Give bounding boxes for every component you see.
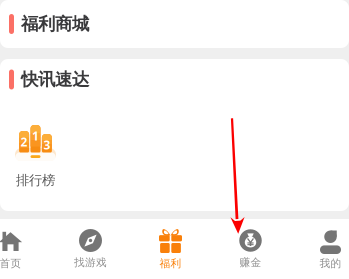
staticText: 1 (32, 128, 39, 144)
staticText: 找游戏 (74, 256, 107, 269)
staticText: 2 (21, 134, 28, 150)
button[interactable]: 2 (0, 100, 71, 200)
staticText: 首页 (0, 257, 21, 270)
staticText: 排行榜 (16, 172, 55, 188)
button[interactable]: 首页 (0, 219, 50, 279)
button[interactable]: 我的 (290, 219, 349, 279)
staticText: 福利商城 (21, 13, 89, 35)
button[interactable]: 找游戏 (50, 219, 130, 279)
button[interactable]: 福利 (130, 219, 210, 279)
staticText: 我的 (319, 257, 341, 270)
staticText: 快讯速达 (21, 69, 89, 90)
staticText: 3 (43, 137, 50, 153)
staticText: 赚金 (239, 256, 261, 269)
staticText: 福利 (159, 257, 181, 270)
button[interactable]: 赚金 (210, 219, 290, 279)
